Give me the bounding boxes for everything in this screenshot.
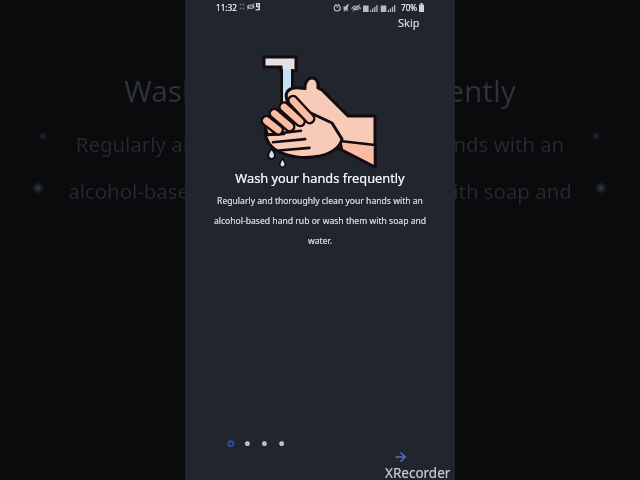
staticText: Skip bbox=[398, 15, 420, 30]
button[interactable]: Skip bbox=[394, 13, 424, 32]
staticText: XRecorder bbox=[385, 464, 451, 480]
button[interactable]: Next bbox=[386, 443, 414, 471]
staticText: Wash your hands frequently bbox=[185, 169, 455, 186]
staticText: Wash your hands frequently bbox=[0, 70, 640, 110]
staticText: 70% bbox=[401, 2, 418, 13]
staticText: Regularly and thoroughly clean your hand… bbox=[0, 130, 640, 252]
staticText: 11:32 bbox=[216, 2, 237, 13]
staticText: Regularly and thoroughly clean your hand… bbox=[185, 195, 455, 246]
